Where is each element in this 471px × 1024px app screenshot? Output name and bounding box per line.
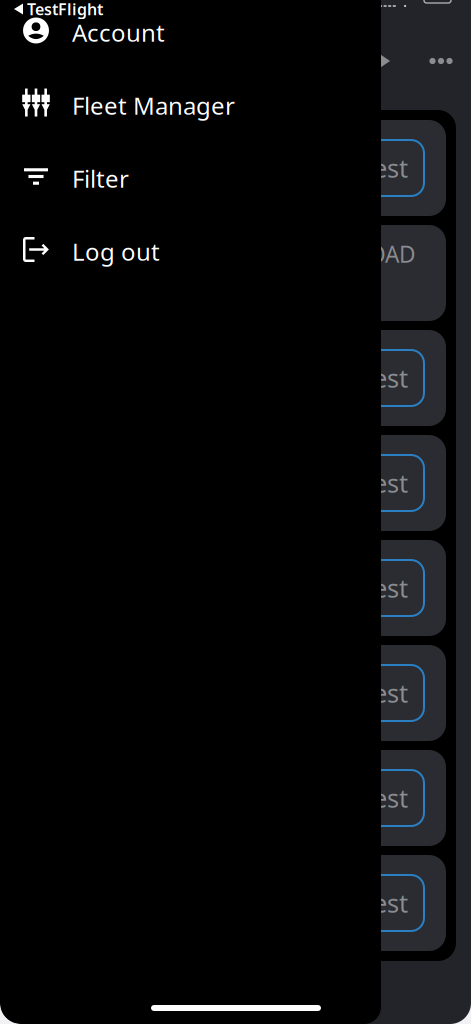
button[interactable]: Play (376, 51, 390, 70)
staticText: Account (72, 17, 165, 48)
staticText: est (373, 571, 408, 605)
staticText: est (373, 361, 408, 395)
staticText: est (373, 676, 408, 710)
button[interactable]: TestFlight (14, 0, 103, 18)
staticText: est (373, 151, 408, 185)
button[interactable]: More (421, 43, 461, 79)
staticText: est (373, 466, 408, 500)
button[interactable]: Log out (0, 215, 381, 288)
staticText: OAD (368, 239, 416, 269)
staticText: Log out (72, 236, 160, 267)
staticText: Filter (72, 163, 129, 194)
staticText: Fleet Manager (72, 90, 235, 121)
button[interactable]: Account (0, 0, 381, 69)
staticText: TestFlight (27, 0, 103, 20)
staticText: est (373, 781, 408, 815)
button[interactable]: Filter (0, 142, 381, 215)
staticText: est (373, 886, 408, 920)
button[interactable]: Fleet Manager (0, 69, 381, 142)
